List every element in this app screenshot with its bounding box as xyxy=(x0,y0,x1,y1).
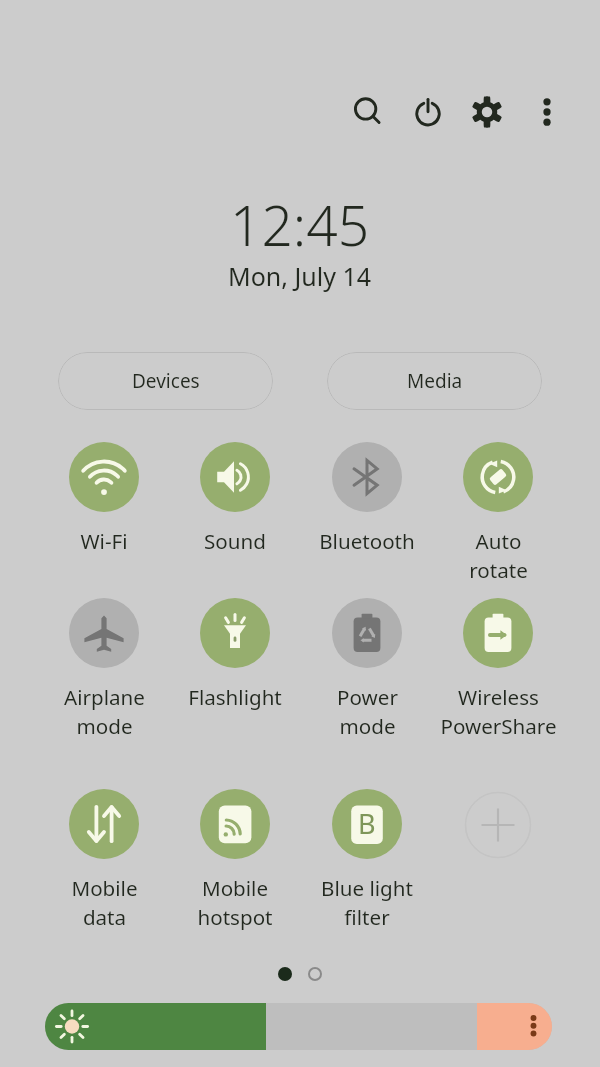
staticText: Flashlight xyxy=(188,683,282,711)
staticText: Sound xyxy=(204,527,266,555)
button[interactable]: Wi-Fi xyxy=(29,442,179,555)
button[interactable]: Power xyxy=(400,84,456,140)
button[interactable]: B xyxy=(292,789,442,931)
button[interactable]: Search xyxy=(340,84,396,140)
button[interactable]: More options xyxy=(519,84,575,140)
button[interactable]: Mobile data xyxy=(29,789,179,931)
staticText: Mobile hotspot xyxy=(197,874,273,931)
button[interactable]: Media xyxy=(327,352,542,410)
button[interactable]: Mobile hotspot xyxy=(160,789,310,931)
staticText: Devices xyxy=(132,368,200,394)
button[interactable]: Auto rotate xyxy=(423,442,573,584)
staticText: Wi-Fi xyxy=(80,527,128,555)
staticText: 12:45 xyxy=(230,187,370,262)
button[interactable]: Brightness xyxy=(45,1003,552,1050)
staticText: Airplane mode xyxy=(64,683,145,740)
staticText: Wireless PowerShare xyxy=(440,683,557,740)
button[interactable]: Sound xyxy=(160,442,310,555)
button[interactable]: Devices xyxy=(58,352,273,410)
button[interactable]: Flashlight xyxy=(160,598,310,711)
button[interactable]: Airplane mode xyxy=(29,598,179,740)
button[interactable]: Wireless PowerShare xyxy=(423,598,573,740)
staticText: Mobile data xyxy=(71,874,138,931)
staticText: Auto rotate xyxy=(469,527,528,584)
staticText: Power mode xyxy=(337,683,398,740)
staticText: B xyxy=(358,805,376,842)
staticText: Blue light filter xyxy=(321,874,413,931)
staticText: Media xyxy=(407,368,463,394)
staticText: Mon, July 14 xyxy=(228,259,372,293)
button[interactable]: Bluetooth xyxy=(292,442,442,555)
button[interactable]: Power mode xyxy=(292,598,442,740)
staticText: Bluetooth xyxy=(319,527,415,555)
button[interactable]: Add xyxy=(463,790,533,860)
button[interactable]: Settings xyxy=(459,84,515,140)
